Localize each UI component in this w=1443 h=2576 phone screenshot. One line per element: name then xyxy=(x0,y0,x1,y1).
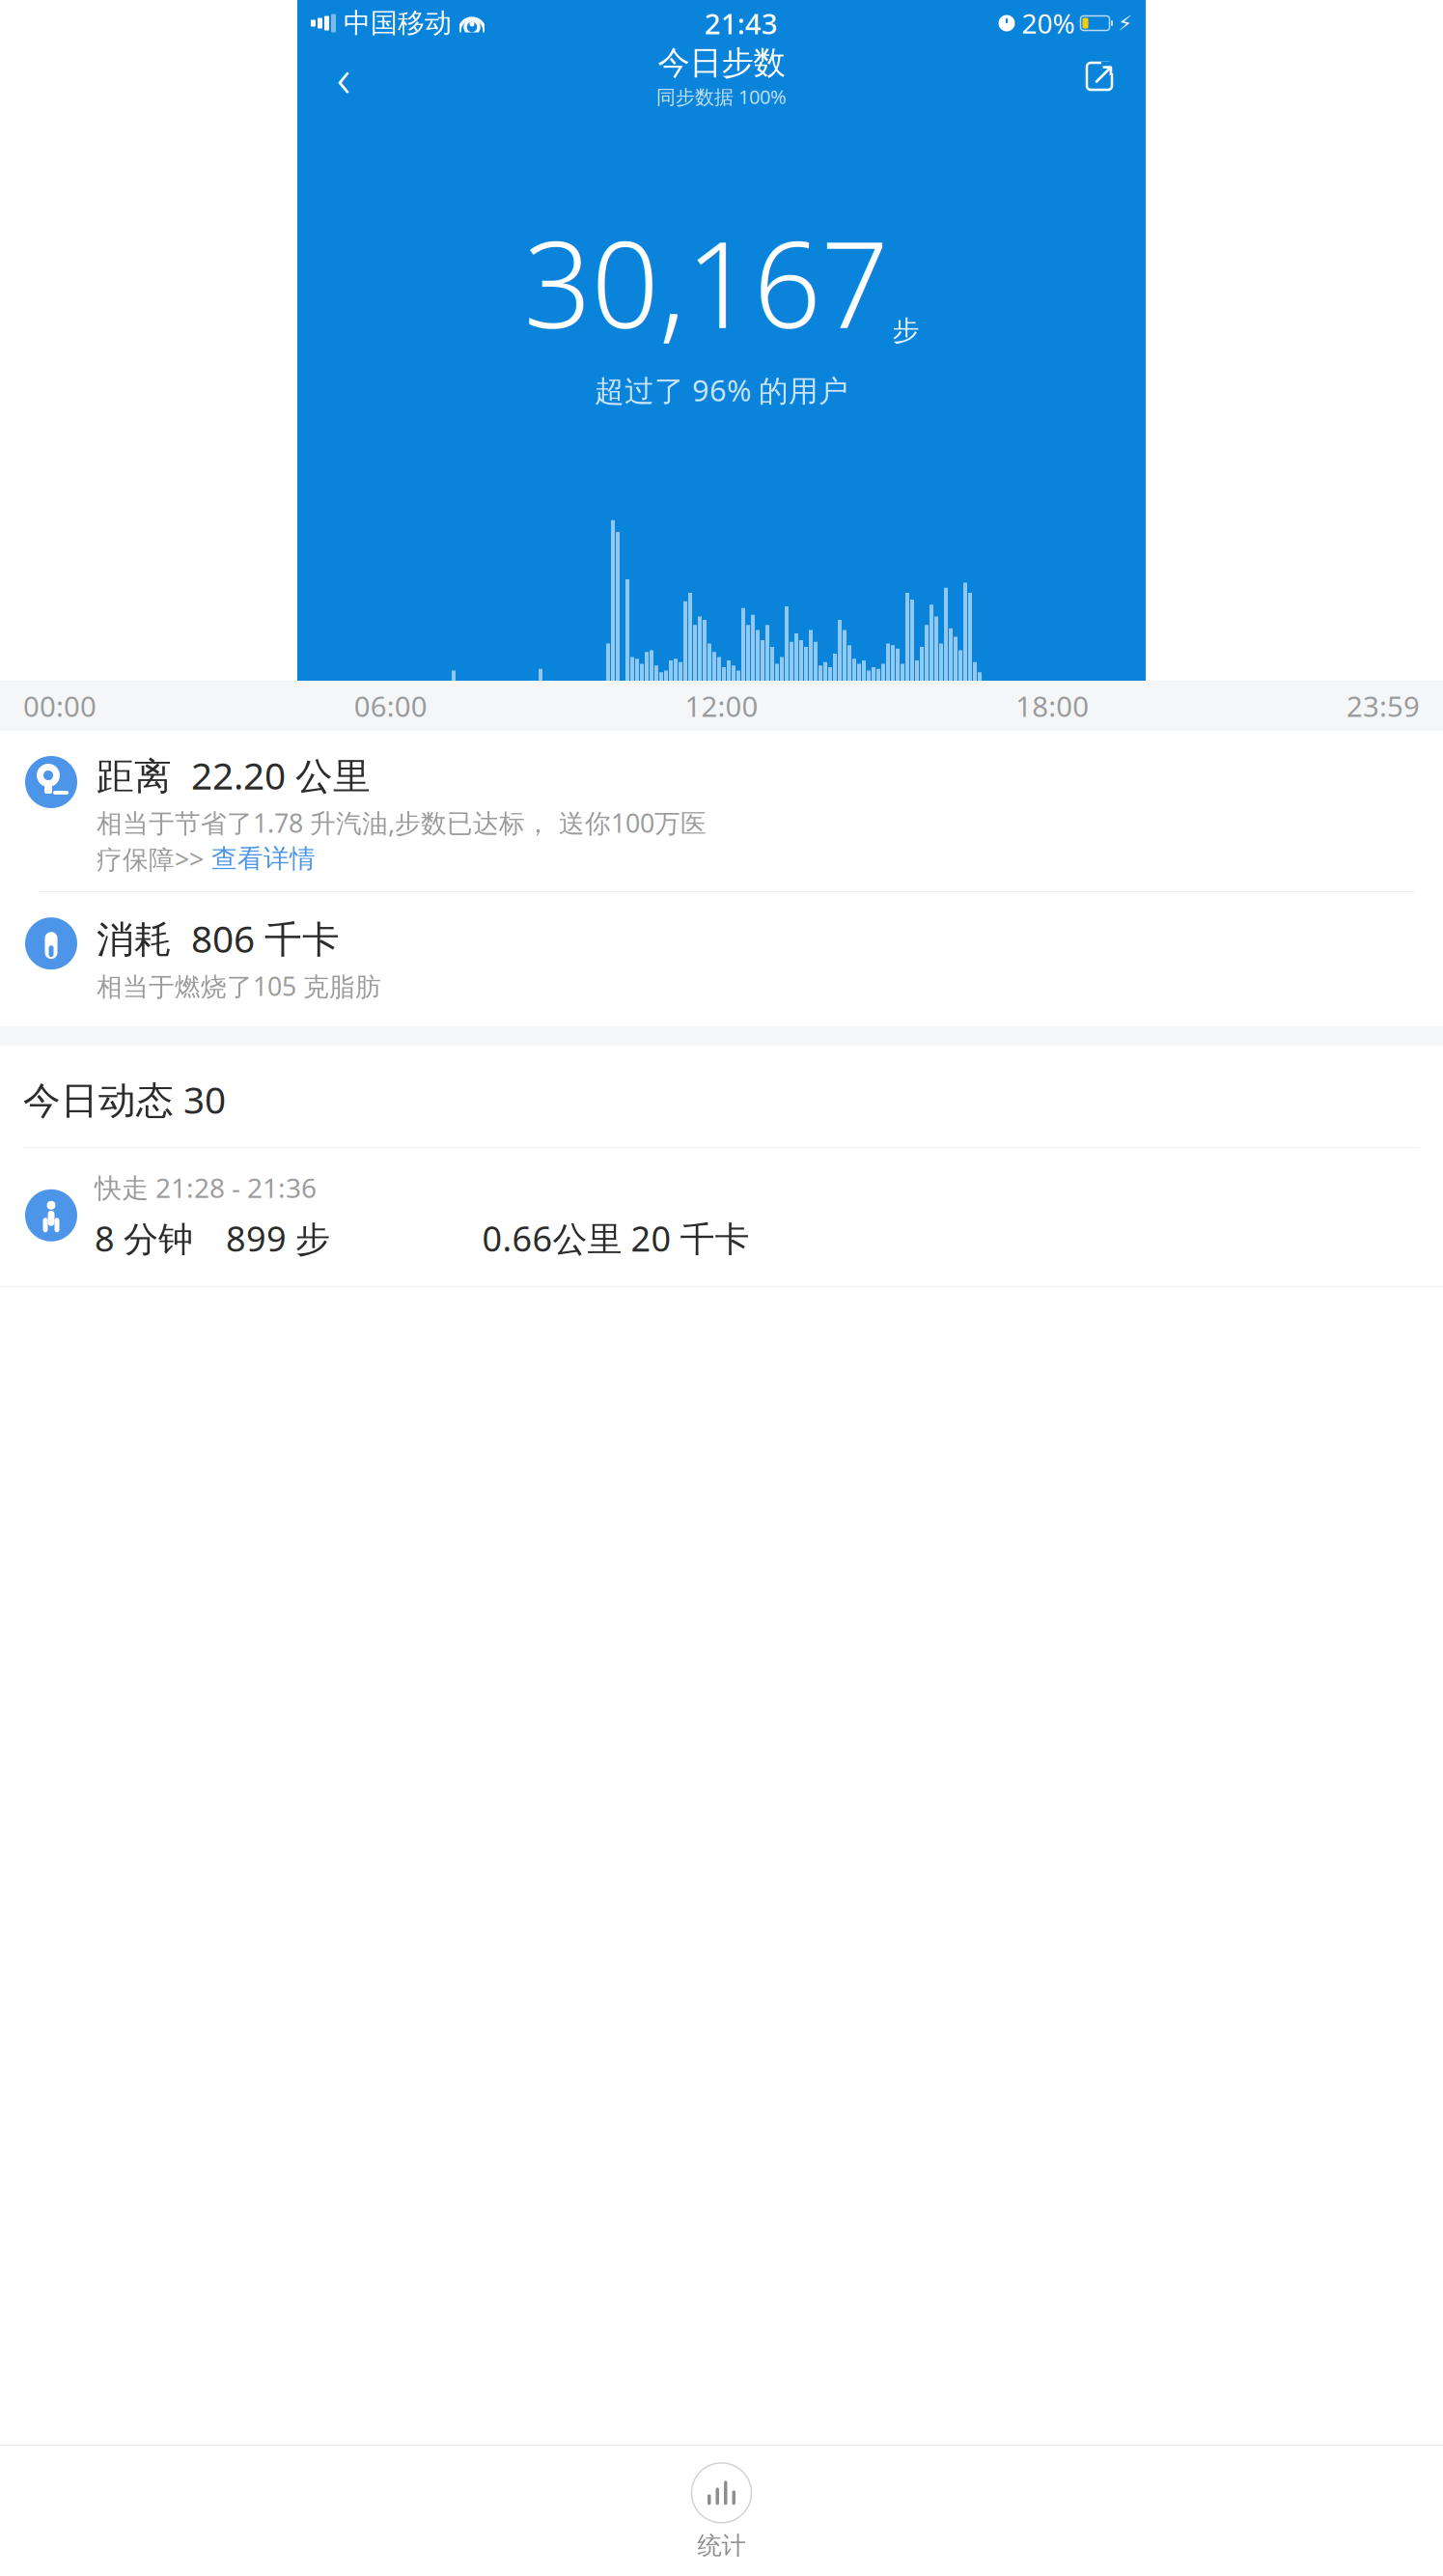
staticText: 21:43 xyxy=(704,4,778,42)
button[interactable]: 快走 21:28 - 21:36 xyxy=(0,1148,1443,1286)
staticText: 06:00 xyxy=(354,687,427,725)
staticText: 查看详情 xyxy=(204,843,316,875)
staticText: 00:00 xyxy=(23,687,97,725)
staticText: 统计 xyxy=(697,2531,746,2561)
staticText: 12:00 xyxy=(685,687,758,725)
staticText: 899 步 xyxy=(226,1215,330,1261)
button[interactable]: 消耗 806 千卡 xyxy=(0,892,1443,1026)
staticText: 相当于节省了1.78 升汽油,步数已达标， 送你100万医 xyxy=(97,806,707,840)
staticText: 步 xyxy=(892,314,919,347)
staticText: ‹ xyxy=(336,40,351,112)
staticText: 快走 21:28 - 21:36 xyxy=(95,1170,317,1205)
staticText: ⚡︎ xyxy=(1118,11,1132,35)
staticText: 中国移动 xyxy=(344,7,452,40)
staticText: 30,167 xyxy=(524,203,888,361)
staticText: 同步数据 100% xyxy=(656,84,787,109)
staticText: 相当于燃烧了105 克脂肪 xyxy=(97,969,381,1003)
staticText: 20% xyxy=(1022,5,1075,41)
staticText: 今日动态 30 xyxy=(23,1075,226,1124)
staticText: 0.66公里 20 千卡 xyxy=(482,1215,749,1261)
staticText: 消耗 806 千卡 xyxy=(97,914,340,963)
staticText: 8 分钟 xyxy=(95,1215,193,1261)
staticText: 超过了 96% 的用户 xyxy=(595,370,848,410)
button[interactable]: 距离 22.20 公里 xyxy=(0,731,1443,891)
staticText: 18:00 xyxy=(1016,687,1089,725)
button[interactable]: 统计 xyxy=(0,2446,1443,2576)
staticText: ↗ xyxy=(1090,56,1116,91)
button[interactable]: 返回 xyxy=(315,50,373,102)
staticText: 距离 22.20 公里 xyxy=(97,750,371,800)
staticText: 23:59 xyxy=(1346,687,1420,725)
staticText: 疗保障>> xyxy=(97,842,204,876)
button[interactable]: 分享 xyxy=(1070,50,1128,102)
staticText: 今日步数 xyxy=(658,43,785,83)
